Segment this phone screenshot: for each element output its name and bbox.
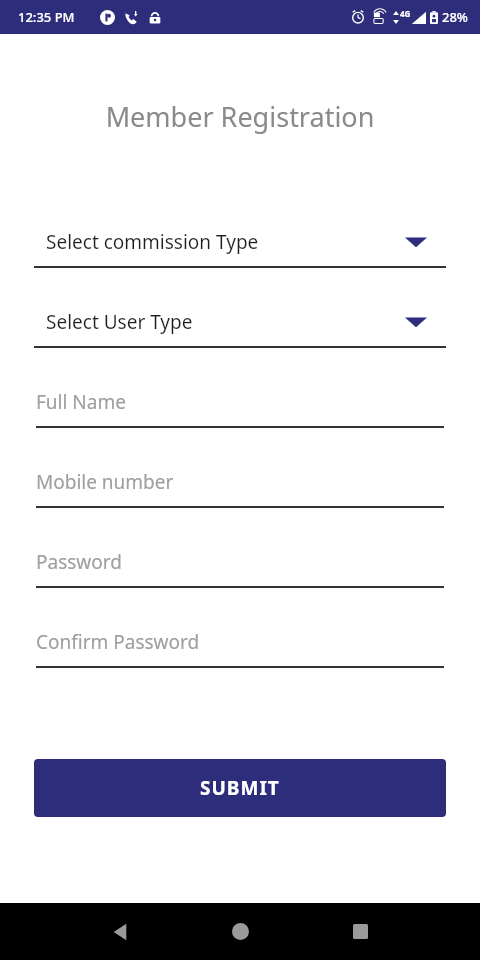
button[interactable]: Mobile number bbox=[36, 460, 444, 508]
staticText: Password bbox=[36, 549, 122, 575]
button[interactable]: Select User Type bbox=[34, 300, 446, 348]
button[interactable]: Recent apps bbox=[330, 903, 390, 960]
staticText: 12:35 PM bbox=[18, 8, 75, 26]
staticText: 28% bbox=[442, 8, 468, 26]
button[interactable]: SUBMIT bbox=[34, 759, 446, 817]
button[interactable]: Home bbox=[210, 903, 270, 960]
staticText: Confirm Password bbox=[36, 629, 200, 655]
staticText: Full Name bbox=[36, 389, 126, 415]
staticText: Select commission Type bbox=[46, 229, 259, 255]
button[interactable]: Select commission Type bbox=[34, 220, 446, 268]
button[interactable]: Confirm Password bbox=[36, 620, 444, 668]
staticText: Mobile number bbox=[36, 469, 174, 495]
button[interactable]: Full Name bbox=[36, 380, 444, 428]
staticText: Member Registration bbox=[0, 98, 480, 135]
staticText: SUBMIT bbox=[200, 775, 280, 801]
staticText: Select User Type bbox=[46, 309, 193, 335]
staticText: 4G bbox=[400, 8, 411, 19]
button[interactable]: Password bbox=[36, 540, 444, 588]
button[interactable]: Back bbox=[90, 903, 150, 960]
